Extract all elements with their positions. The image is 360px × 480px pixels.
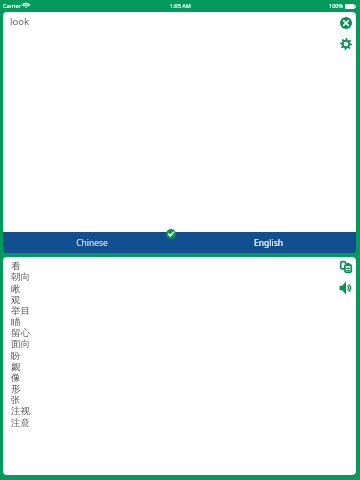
staticText: 觑 — [11, 361, 21, 373]
staticText: 100% — [329, 2, 344, 9]
staticText: 观 — [11, 294, 21, 306]
staticText: Carrier — [3, 2, 21, 9]
staticText: 像 — [11, 372, 21, 384]
staticText: 注意 — [11, 417, 30, 429]
staticText: 张 — [11, 394, 21, 406]
staticText: 1:05 AM — [170, 2, 191, 9]
staticText: Chinese — [76, 237, 108, 249]
button[interactable]: Speak — [335, 277, 356, 298]
staticText: 看 — [11, 260, 21, 272]
staticText: 留心 — [11, 327, 30, 339]
button[interactable]: Chinese — [3, 232, 179, 253]
staticText: 瞄 — [11, 316, 21, 328]
button[interactable]: Clear text — [335, 12, 356, 33]
button[interactable]: English — [179, 232, 356, 253]
button[interactable]: Copy — [335, 257, 356, 277]
button[interactable]: Settings — [335, 33, 356, 54]
staticText: 瞅 — [11, 283, 21, 295]
staticText: 朝向 — [11, 271, 30, 283]
staticText: 形 — [11, 383, 21, 395]
staticText: 注视 — [11, 405, 30, 417]
button[interactable]: Verified translation — [166, 229, 176, 239]
staticText: 举目 — [11, 305, 30, 317]
staticText: 盼 — [11, 350, 21, 362]
staticText: look — [10, 15, 30, 28]
staticText: 面向 — [11, 338, 30, 350]
staticText: English — [254, 237, 283, 249]
